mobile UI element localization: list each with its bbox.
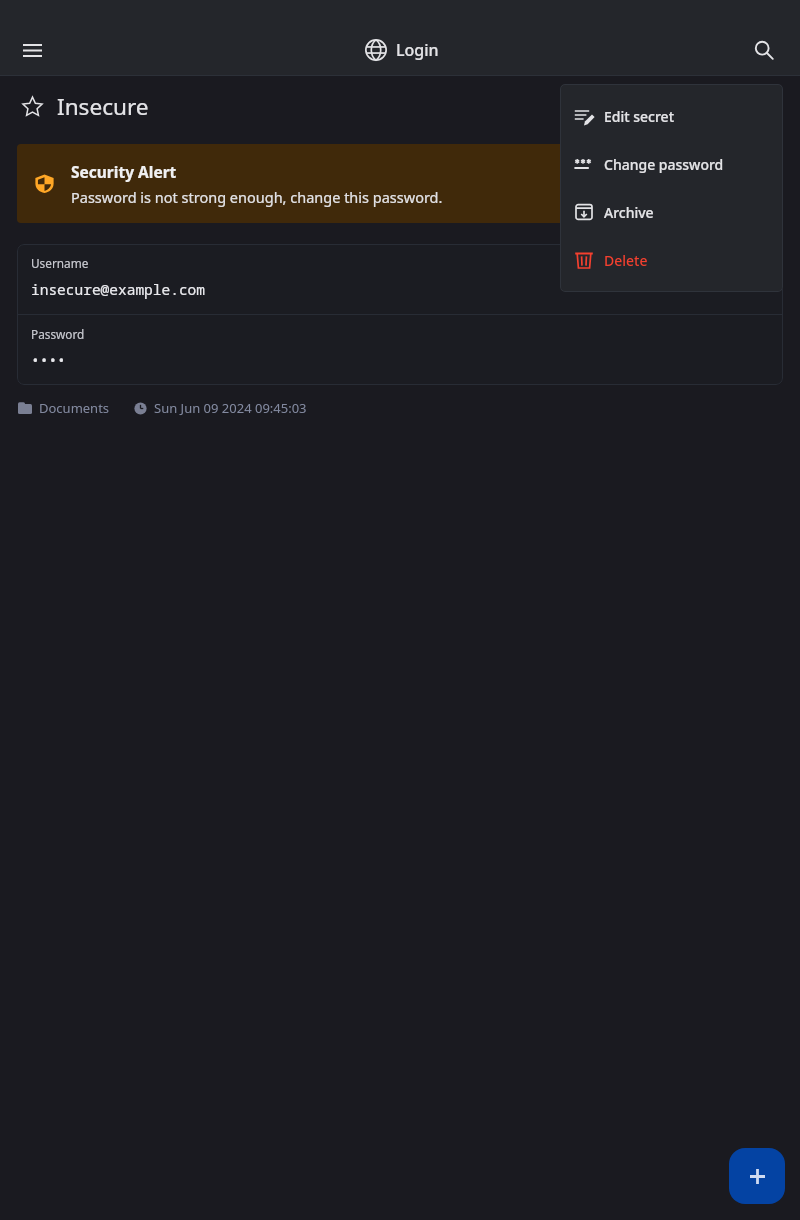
staticText: Edit secret — [604, 107, 675, 126]
staticText: Password — [31, 326, 85, 342]
staticText: Sun Jun 09 2024 09:45:03 — [154, 399, 307, 417]
staticText: Password is not strong enough, change th… — [71, 187, 443, 207]
staticText: Insecure — [57, 91, 149, 122]
staticText: Security Alert — [71, 161, 177, 182]
staticText: •••• — [31, 350, 66, 370]
button[interactable]: Archive — [560, 188, 783, 236]
staticText: Delete — [604, 251, 648, 270]
staticText: insecure@example.com — [31, 279, 205, 299]
button[interactable]: Username — [17, 244, 783, 314]
button[interactable]: Add — [729, 1148, 785, 1204]
button[interactable]: Security Alert — [17, 144, 783, 223]
staticText: Change password — [604, 155, 724, 174]
button[interactable]: Change password — [560, 140, 783, 188]
staticText: Login — [396, 39, 439, 61]
staticText: Documents — [39, 399, 110, 417]
button[interactable]: Delete — [560, 236, 783, 284]
button[interactable]: Menu — [10, 28, 54, 72]
button[interactable]: Favorite — [22, 96, 43, 117]
staticText: Archive — [604, 203, 654, 222]
button[interactable]: Password — [17, 315, 783, 385]
staticText: Username — [31, 255, 89, 271]
button[interactable]: Search — [742, 28, 786, 72]
button[interactable]: Edit secret — [560, 92, 783, 140]
